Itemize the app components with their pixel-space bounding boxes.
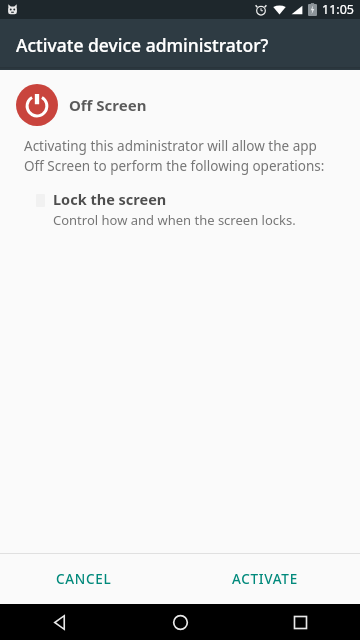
staticText: ACTIVATE — [232, 570, 298, 588]
staticText: 11:05 — [322, 1, 354, 18]
staticText: Activating this administrator will allow… — [24, 137, 338, 175]
staticText: Lock the screen — [53, 189, 167, 209]
staticText: CANCEL — [56, 570, 112, 588]
button[interactable]: Back — [0, 604, 120, 640]
button[interactable]: CANCEL — [44, 561, 124, 597]
staticText: Control how and when the screen locks. — [53, 211, 296, 229]
staticText: Off Screen — [69, 95, 147, 115]
button[interactable]: ACTIVATE — [220, 561, 310, 597]
button[interactable]: Recent apps — [240, 604, 360, 640]
staticText: Activate device administrator? — [16, 33, 269, 57]
button[interactable]: Home — [120, 604, 240, 640]
